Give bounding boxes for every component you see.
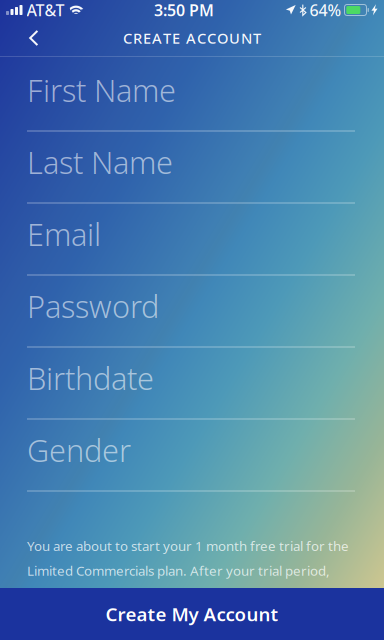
button[interactable]: Last Name [27,131,357,203]
button[interactable]: Email [27,203,357,275]
button[interactable]: Create My Account [0,588,384,640]
staticText: First Name [27,70,176,110]
staticText: 64% [309,0,341,21]
staticText: Birthdate [27,358,154,398]
staticText: Password [27,286,159,326]
staticText: C R E A T E A C C O U N T [123,28,261,48]
staticText: You are about to start your 1 month free… [27,537,349,640]
button[interactable]: Password [27,275,357,347]
button[interactable]: Birthdate [27,347,357,419]
staticText: Last Name [27,142,173,182]
staticText: Email [27,214,101,254]
staticText: Create My Account [105,602,278,626]
button[interactable]: Back [12,20,56,56]
button[interactable]: Gender [27,419,357,491]
staticText: 3:50 PM [154,0,214,21]
staticText: AT&T [26,0,64,21]
staticText: Gender [27,430,131,470]
button[interactable]: First Name [27,59,357,131]
